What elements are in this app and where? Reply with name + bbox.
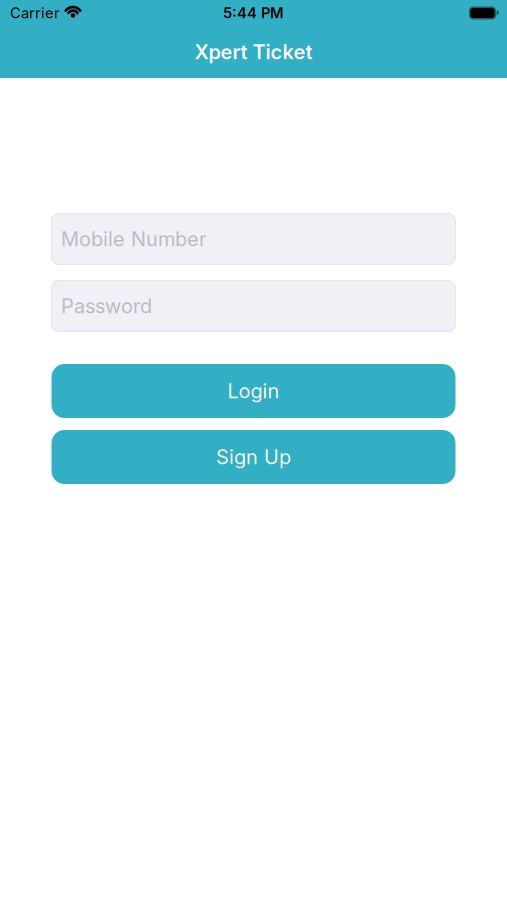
button[interactable]: Sign Up <box>51 430 455 484</box>
button[interactable]: Password <box>51 280 456 332</box>
staticText: Mobile Number <box>61 227 206 251</box>
staticText: Carrier <box>10 4 60 22</box>
button[interactable]: Login <box>51 364 455 418</box>
staticText: Xpert Ticket <box>194 40 312 64</box>
staticText: Login <box>227 379 279 403</box>
staticText: Sign Up <box>216 445 291 469</box>
staticText: 5:44 PM <box>223 4 284 22</box>
staticText: Password <box>61 294 152 318</box>
button[interactable]: Mobile Number <box>51 213 456 265</box>
